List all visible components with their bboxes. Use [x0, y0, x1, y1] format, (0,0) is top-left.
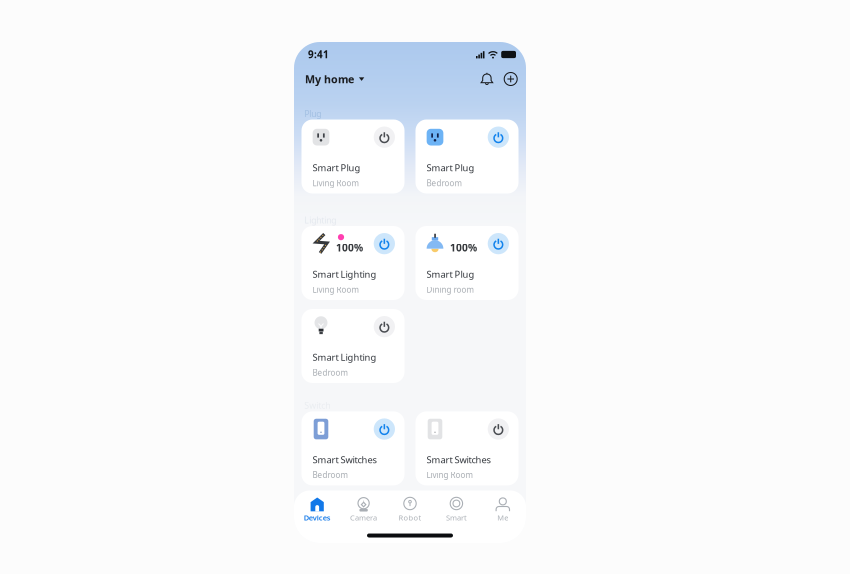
staticText: Smart Lighting [312, 268, 376, 281]
button[interactable]: Smart Plug [301, 119, 404, 193]
staticText: Living Room [312, 284, 358, 295]
staticText: Plug [304, 107, 321, 119]
button[interactable]: Smart [433, 497, 480, 523]
button[interactable]: My home [305, 72, 364, 86]
button[interactable]: Smart Lighting [301, 309, 404, 383]
button[interactable]: Camera [340, 497, 387, 523]
staticText: Smart Plug [312, 161, 360, 174]
staticText: Bedroom [312, 367, 347, 378]
staticText: 100% [336, 241, 363, 254]
staticText: My home [305, 72, 354, 86]
button[interactable]: Smart Plug [415, 119, 518, 193]
staticText: Living Room [426, 469, 472, 480]
button[interactable]: Devices [294, 497, 340, 523]
staticText: Robot [398, 513, 421, 523]
staticText: Bedroom [426, 178, 461, 188]
button[interactable]: Me [480, 497, 526, 523]
button[interactable]: 100% [301, 226, 404, 300]
staticText: Living Room [312, 178, 358, 188]
staticText: Smart Plug [426, 268, 474, 281]
staticText: Camera [350, 513, 377, 523]
staticText: 9:41 [308, 48, 329, 61]
button[interactable]: 100% [415, 226, 518, 300]
staticText: Smart Plug [426, 161, 474, 174]
button[interactable]: Add device [501, 70, 520, 88]
staticText: Smart Switches [426, 453, 490, 466]
staticText: Smart Switches [312, 453, 376, 466]
button[interactable]: Smart Switches [301, 411, 404, 485]
button[interactable]: Notifications [478, 70, 496, 88]
staticText: Smart Lighting [312, 351, 376, 364]
staticText: Bedroom [312, 469, 347, 480]
staticText: Switch [304, 399, 330, 411]
button[interactable]: Smart Switches [415, 411, 518, 485]
staticText: Dining room [426, 284, 473, 295]
staticText: 100% [450, 241, 477, 254]
staticText: Me [497, 513, 508, 523]
staticText: Lighting [304, 214, 336, 226]
staticText: Devices [304, 513, 331, 523]
staticText: Smart [446, 513, 467, 523]
button[interactable]: Robot [387, 497, 433, 523]
